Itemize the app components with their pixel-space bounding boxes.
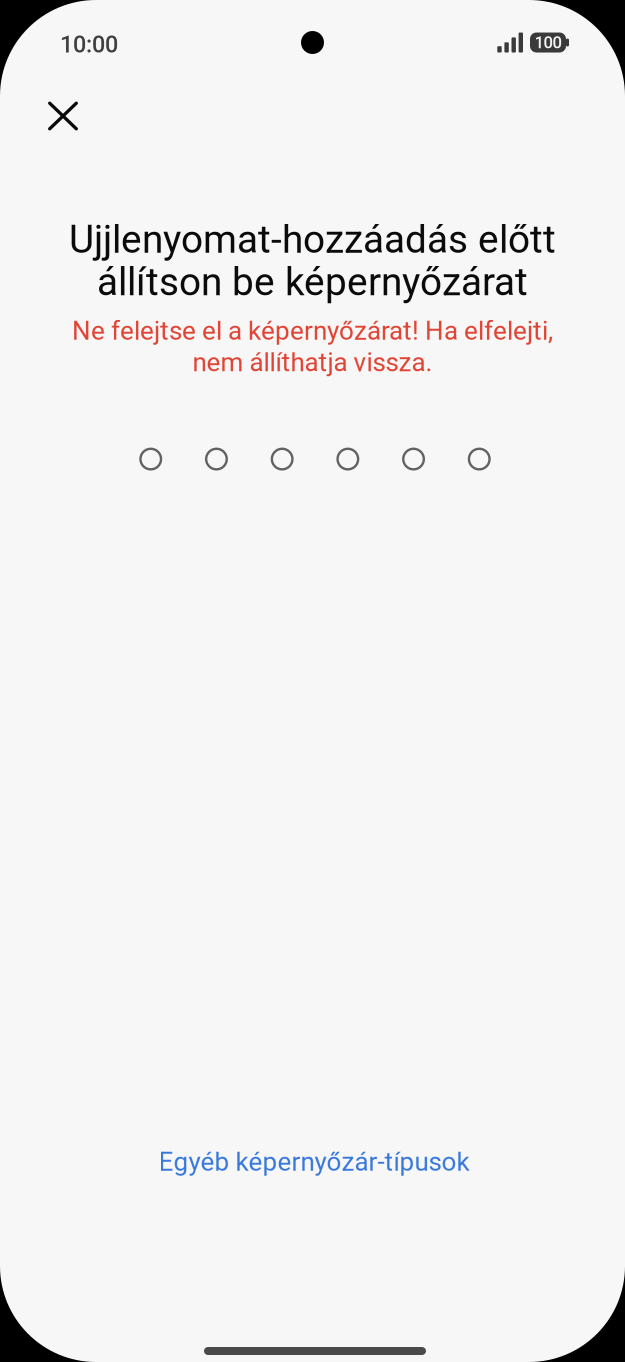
button[interactable]: Close: [32, 85, 94, 147]
staticText: állítson be képernyőzárat: [97, 259, 528, 305]
staticText: Ne felejtse el a képernyőzárat! Ha elfel…: [72, 316, 553, 346]
staticText: nem állíthatja vissza.: [192, 347, 432, 378]
staticText: Ujjlenyomat-hozzáadás előtt: [69, 217, 556, 262]
button[interactable]: Egyéb képernyőzár-típusok: [0, 1132, 625, 1191]
staticText: 100: [534, 33, 561, 52]
staticText: Egyéb képernyőzár-típusok: [158, 1146, 469, 1177]
staticText: 10:00: [60, 31, 118, 58]
